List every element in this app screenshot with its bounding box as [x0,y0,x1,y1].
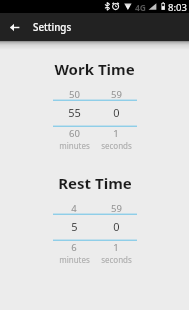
staticText: 6 [71,241,77,254]
staticText: 59 [111,88,122,101]
staticText: 1 [113,241,119,254]
staticText: Work Time [54,59,135,79]
staticText: 0 [113,105,120,120]
staticText: 4 [71,202,77,215]
staticText: Settings [33,21,72,34]
staticText: 5 [71,219,78,234]
staticText: minutes [59,140,90,151]
button[interactable]: 59 [95,200,137,262]
staticText: seconds [101,254,132,265]
staticText: 55 [68,105,81,120]
button[interactable]: Navigate up [2,13,28,41]
staticText: 1 [113,127,119,140]
button[interactable]: 59 [95,86,137,148]
staticText: 0 [113,219,120,234]
staticText: 8:03 [168,1,187,14]
staticText: 59 [111,202,122,215]
staticText: minutes [59,254,90,265]
staticText: seconds [101,140,132,151]
staticText: Rest Time [58,173,132,193]
button[interactable]: 4 [53,200,95,262]
staticText: 4G [135,2,147,14]
button[interactable]: 50 [53,86,95,148]
staticText: 50 [69,88,80,101]
staticText: 60 [69,127,80,140]
